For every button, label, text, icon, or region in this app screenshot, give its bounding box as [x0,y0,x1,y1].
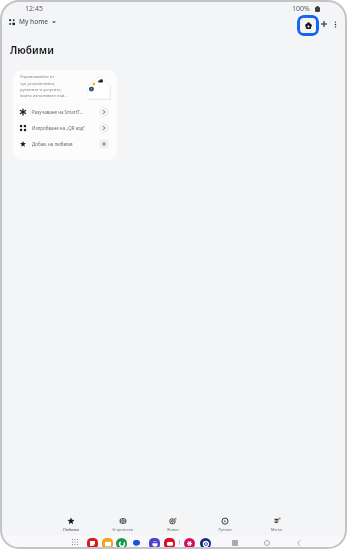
button[interactable]: Back [293,537,304,547]
staticText: Живот [167,527,179,532]
button[interactable]: App 6 [163,537,175,547]
button[interactable]: Add [318,18,330,30]
button[interactable]: App 1 [86,537,98,547]
staticText: Устройства [112,527,133,532]
button[interactable]: App 2 [101,537,113,547]
staticText: Разучаване на SmartT... [32,109,84,115]
staticText: Управлявайте от тук устройствата, рутини… [20,74,68,98]
button[interactable]: App 4 [130,537,142,547]
staticText: 12:45 [25,4,43,14]
button[interactable]: Добав. на любими [13,136,117,152]
button[interactable]: My home [9,15,56,28]
button[interactable]: Recents [229,537,240,547]
button[interactable]: App 7 [183,537,195,547]
staticText: Изпробване на „QR код“ [32,125,85,131]
button[interactable]: Home [261,537,272,547]
button[interactable]: Живот [149,517,197,537]
button[interactable]: More options [329,18,341,30]
staticText: My home [19,17,49,26]
button[interactable]: Меню [252,517,300,537]
button[interactable]: App 3 [115,537,127,547]
staticText: 100% [292,4,310,14]
button[interactable]: Рутини [201,517,249,537]
staticText: Рутини [218,527,232,532]
button[interactable]: Любими [47,517,95,537]
button[interactable]: Devices [297,15,319,36]
button[interactable]: Устройства [98,517,146,537]
button[interactable]: App 5 [148,537,160,547]
staticText: Любими [63,527,79,532]
button[interactable]: App 8 [199,537,211,547]
button[interactable]: Разучаване на SmartT... [13,104,117,120]
staticText: Меню [271,527,282,532]
button[interactable]: Apps [70,537,80,547]
button[interactable]: Изпробване на „QR код“ [13,120,117,136]
staticText: Любими [10,43,54,57]
staticText: Добав. на любими [32,141,73,147]
